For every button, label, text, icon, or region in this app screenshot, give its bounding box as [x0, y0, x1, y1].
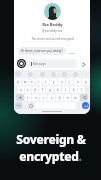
button[interactable]: Toolbar action 2	[39, 71, 45, 77]
button[interactable]: Toolbar action 4	[61, 71, 67, 77]
button[interactable]: e	[29, 78, 35, 85]
button[interactable]: w	[22, 78, 28, 85]
staticText: @riareddy.sov	[42, 29, 62, 33]
button[interactable]: Add attachment	[17, 59, 26, 68]
button[interactable]: Message	[28, 59, 77, 68]
button[interactable]: Numbers	[15, 102, 22, 109]
staticText: y	[53, 80, 55, 84]
staticText: s	[27, 88, 29, 92]
staticText: b	[59, 96, 61, 100]
staticText: f	[42, 88, 43, 92]
button[interactable]: t	[43, 78, 49, 85]
button[interactable]: s	[25, 86, 31, 93]
button[interactable]: y	[50, 78, 57, 85]
staticText: This chat is end-to-end encrypted	[31, 37, 74, 41]
button[interactable]: Comma	[23, 102, 27, 109]
staticText: t	[45, 80, 47, 84]
staticText: Ria Reddy	[42, 22, 63, 28]
staticText: w	[24, 80, 27, 84]
button[interactable]: x	[32, 94, 39, 101]
button[interactable]: f	[39, 86, 45, 93]
staticText: z	[27, 96, 29, 100]
button[interactable]: Toolbar action 5	[72, 71, 78, 77]
button[interactable]: b	[56, 94, 63, 101]
button[interactable]: Search	[15, 71, 21, 77]
button[interactable]: g	[46, 86, 53, 93]
staticText: h	[57, 88, 59, 92]
staticText: m	[74, 96, 77, 100]
staticText: d	[34, 88, 36, 92]
button[interactable]: Emoji	[28, 103, 34, 109]
staticText: Hi there, how are you doing?	[21, 49, 63, 53]
button[interactable]: p	[82, 78, 89, 85]
button[interactable]: l	[78, 86, 85, 93]
button[interactable]: More	[83, 71, 89, 77]
button[interactable]: u	[58, 78, 65, 85]
staticText: k	[73, 88, 75, 92]
staticText: o	[77, 80, 79, 84]
staticText: e	[31, 80, 33, 84]
button[interactable]: m	[72, 94, 79, 101]
button[interactable]: Toolbar action 3	[50, 71, 56, 77]
button[interactable]: i	[66, 78, 73, 85]
button[interactable]: z	[25, 94, 31, 101]
button[interactable]: h	[54, 86, 61, 93]
staticText: j	[65, 88, 66, 92]
button[interactable]: Period	[77, 102, 81, 109]
staticText: a	[20, 88, 22, 92]
button[interactable]: Shift	[16, 94, 24, 101]
staticText: encrypted.	[19, 148, 82, 164]
button[interactable]: Enter	[82, 102, 89, 109]
staticText: ,	[25, 104, 26, 108]
staticText: Message	[33, 62, 46, 66]
staticText: ?123	[16, 104, 21, 107]
button[interactable]: Send	[79, 60, 87, 68]
button[interactable]: Hi there, how are you doing?	[18, 47, 66, 55]
staticText: v	[51, 96, 53, 100]
button[interactable]: j	[62, 86, 69, 93]
staticText: n	[67, 96, 69, 100]
staticText: x	[35, 96, 37, 100]
staticText: p	[85, 80, 87, 84]
staticText: c	[43, 96, 45, 100]
button[interactable]: r	[36, 78, 42, 85]
staticText: l	[81, 88, 82, 92]
button[interactable]: d	[32, 86, 38, 93]
staticText: i	[69, 80, 70, 84]
staticText: u	[61, 80, 63, 84]
staticText: 10:42	[68, 52, 74, 55]
button[interactable]: v	[48, 94, 55, 101]
button[interactable]: Backspace	[80, 94, 88, 101]
button[interactable]: a	[18, 86, 24, 93]
staticText: r	[38, 80, 40, 84]
button[interactable]: n	[64, 94, 71, 101]
button[interactable]: k	[70, 86, 77, 93]
staticText: Sovereign &	[16, 131, 86, 147]
button[interactable]: Contact avatar	[44, 3, 61, 20]
staticText: .	[79, 104, 80, 108]
button[interactable]: o	[74, 78, 81, 85]
button[interactable]: c	[40, 94, 47, 101]
button[interactable]: Toolbar action 1	[27, 71, 33, 77]
staticText: g	[49, 88, 51, 92]
staticText: q	[17, 80, 19, 84]
button[interactable]: q	[15, 78, 21, 85]
